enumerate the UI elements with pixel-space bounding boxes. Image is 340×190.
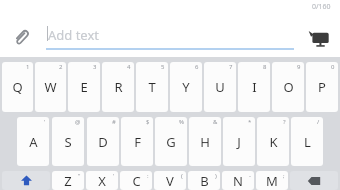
staticText: Y (182, 78, 190, 96)
staticText: S (64, 133, 72, 151)
staticText: U (215, 78, 225, 96)
button[interactable]: Y (170, 62, 202, 112)
staticText: / (317, 118, 320, 126)
staticText: P (318, 78, 326, 96)
staticText: Z (64, 172, 72, 190)
staticText: ' (44, 118, 46, 126)
staticText: ( (181, 172, 183, 180)
button[interactable]: M (256, 171, 288, 190)
button[interactable]: Shift (2, 171, 50, 190)
staticText: 8 (263, 63, 267, 71)
staticText: F (134, 133, 141, 151)
button[interactable]: Backspace (290, 171, 338, 190)
staticText: * (248, 118, 252, 126)
staticText: ' (113, 172, 115, 180)
button[interactable]: I (238, 62, 270, 112)
staticText: @ (75, 118, 81, 126)
staticText: 0 (331, 63, 335, 71)
button[interactable]: L (291, 117, 323, 166)
button[interactable]: O (272, 62, 304, 112)
staticText: A (29, 133, 38, 151)
button[interactable]: C (120, 171, 152, 190)
button[interactable]: S (52, 117, 84, 166)
staticText: 5 (161, 63, 165, 71)
button[interactable]: E (68, 62, 100, 112)
staticText: # (112, 118, 116, 126)
staticText: J (237, 133, 241, 151)
button[interactable]: Send message (304, 24, 334, 54)
staticText: V (166, 172, 174, 190)
staticText: " (78, 172, 81, 180)
staticText: C (132, 172, 141, 190)
staticText: D (98, 133, 108, 151)
button[interactable]: N (222, 171, 254, 190)
staticText: % (179, 118, 184, 126)
staticText: R (114, 78, 123, 96)
staticText: 4 (127, 63, 131, 71)
staticText: E (80, 78, 88, 96)
button[interactable]: D (87, 117, 119, 166)
button[interactable]: T (136, 62, 168, 112)
button[interactable]: V (154, 171, 186, 190)
staticText: X (98, 172, 106, 190)
staticText: N (233, 172, 243, 190)
button[interactable]: Q (2, 62, 33, 112)
staticText: Add text (48, 26, 100, 44)
button[interactable]: Z (52, 171, 84, 190)
staticText: M (266, 172, 278, 190)
staticText: & (213, 118, 218, 126)
button[interactable]: B (188, 171, 220, 190)
button[interactable]: Attach (10, 26, 32, 48)
staticText: H (200, 133, 210, 151)
staticText: ? (283, 118, 286, 126)
button[interactable]: P (306, 62, 338, 112)
staticText: K (269, 133, 278, 151)
button[interactable]: X (86, 171, 118, 190)
staticText: O (283, 78, 294, 96)
button[interactable]: H (189, 117, 221, 166)
button[interactable]: A (17, 117, 49, 166)
staticText: ; (283, 172, 285, 180)
staticText: 9 (297, 63, 301, 71)
staticText: : (147, 172, 149, 180)
button[interactable]: G (155, 117, 187, 166)
staticText: G (166, 133, 176, 151)
staticText: T (148, 78, 156, 96)
staticText: ) (215, 172, 217, 180)
staticText: 0/160 (312, 2, 331, 12)
staticText: B (200, 172, 209, 190)
button[interactable]: U (204, 62, 236, 112)
staticText: I (252, 78, 257, 96)
staticText: W (44, 78, 57, 96)
button[interactable]: W (35, 62, 66, 112)
staticText: 1 (26, 63, 30, 71)
staticText: $ (146, 118, 150, 126)
staticText: 3 (93, 63, 97, 71)
staticText: L (304, 133, 311, 151)
button[interactable]: Add text (46, 24, 294, 50)
staticText: - (249, 172, 251, 180)
button[interactable]: R (102, 62, 134, 112)
staticText: 2 (59, 63, 63, 71)
button[interactable]: J (223, 117, 255, 166)
button[interactable]: F (121, 117, 153, 166)
button[interactable]: K (257, 117, 289, 166)
staticText: 7 (229, 63, 233, 71)
staticText: Q (12, 78, 23, 96)
staticText: 6 (195, 63, 199, 71)
